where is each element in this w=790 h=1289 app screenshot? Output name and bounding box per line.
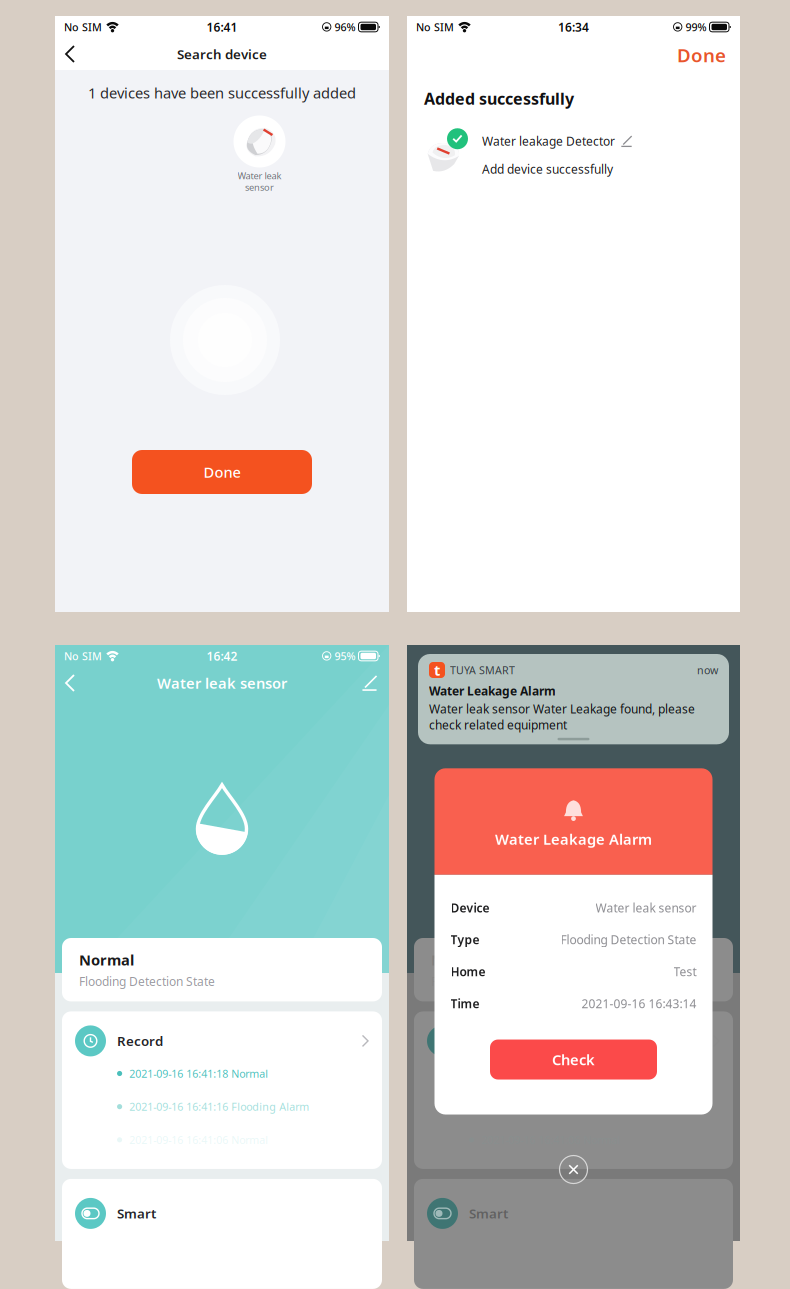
staticText: Water leak sensor Water Leakage found, p… xyxy=(429,701,695,733)
staticText: 95% xyxy=(334,649,355,663)
button[interactable]: Edit xyxy=(348,669,389,696)
staticText: 16:34 xyxy=(558,19,589,35)
button[interactable]: Check xyxy=(490,1039,657,1079)
staticText: Normal xyxy=(431,950,486,969)
staticText: Flooding Detection State xyxy=(560,932,696,948)
staticText: No SIM xyxy=(416,20,454,34)
staticText: Water Leakage Alarm xyxy=(495,829,652,849)
button[interactable]: Rename device xyxy=(620,135,633,148)
staticText: Check xyxy=(552,1050,595,1069)
staticText: 2021-09-16 16:41:16 Flooding Alarm xyxy=(129,1100,309,1114)
button[interactable]: Back xyxy=(55,669,88,697)
button[interactable]: Done xyxy=(132,450,312,494)
staticText: Record xyxy=(117,1032,163,1050)
staticText: Smart xyxy=(469,1205,508,1222)
staticText: t xyxy=(434,660,440,680)
staticText: 1 devices have been successfully added xyxy=(88,83,356,102)
staticText: 96% xyxy=(334,20,355,34)
staticText: 99% xyxy=(685,20,706,34)
staticText: Water leak sensor xyxy=(157,673,287,693)
staticText: Type xyxy=(450,932,479,948)
staticText: Smart xyxy=(117,1205,156,1222)
button[interactable]: Done xyxy=(663,37,740,73)
staticText: No SIM xyxy=(64,20,102,34)
staticText: now xyxy=(697,663,718,677)
staticText: Done xyxy=(677,43,726,67)
staticText: Water leak sensor xyxy=(595,900,696,916)
staticText: Search device xyxy=(177,45,267,63)
staticText: Water leak xyxy=(237,169,281,182)
staticText: Normal xyxy=(79,950,134,969)
staticText: Water Leakage Alarm xyxy=(429,683,556,699)
staticText: 2021-09-16 16:43:14 xyxy=(581,996,696,1011)
staticText: Flooding Detection State xyxy=(79,973,215,989)
staticText: sensor xyxy=(245,181,274,193)
staticText: Home xyxy=(450,964,485,980)
button[interactable]: Close xyxy=(559,1155,587,1183)
staticText: Flooding Detection State xyxy=(431,973,567,989)
staticText: Added successfully xyxy=(424,88,574,109)
staticText: Done xyxy=(203,462,240,482)
staticText: 16:42 xyxy=(206,648,237,664)
staticText: Device xyxy=(450,900,489,916)
button[interactable]: Record xyxy=(414,1011,733,1066)
staticText: TUYA SMART xyxy=(450,663,515,677)
staticText: 2021-09-16 16:41:18 Normal xyxy=(481,1066,620,1081)
staticText: Add device successfully xyxy=(482,161,613,177)
staticText: Time xyxy=(450,996,479,1011)
staticText: 2021-09-16 16:41:18 Normal xyxy=(129,1066,268,1081)
button[interactable]: Record xyxy=(62,1011,382,1066)
staticText: Record xyxy=(469,1032,515,1050)
button[interactable]: Back xyxy=(55,40,88,68)
staticText: 2021-09-16 16:41:06 Normal xyxy=(129,1133,268,1147)
staticText: Test xyxy=(673,964,696,980)
staticText: No SIM xyxy=(64,649,102,663)
staticText: 16:41 xyxy=(206,19,237,35)
staticText: Water leakage Detector xyxy=(482,133,615,149)
